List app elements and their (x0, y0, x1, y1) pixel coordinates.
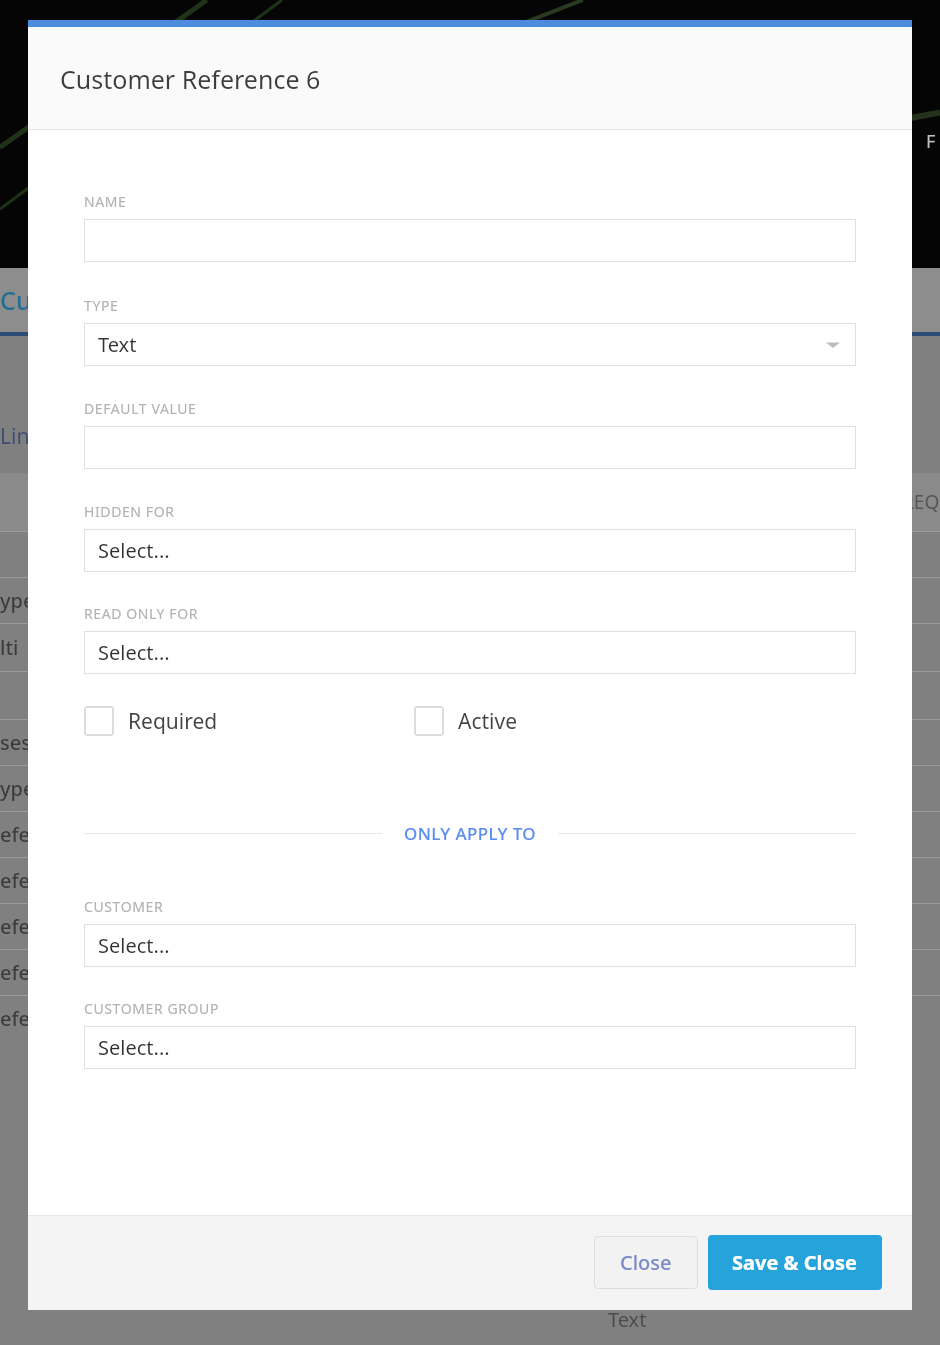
staticText: lti (0, 634, 19, 661)
button[interactable]: Select... (84, 631, 856, 674)
staticText: Close (620, 1249, 672, 1276)
staticText: efe (0, 867, 31, 894)
staticText: ONLY APPLY TO (404, 822, 536, 845)
staticText: ype (0, 587, 35, 614)
staticText: Select... (98, 1034, 170, 1061)
staticText: Lin (0, 422, 30, 451)
staticText: Cus (0, 283, 44, 317)
staticText: REQ (902, 489, 940, 515)
staticText: CUSTOMER GROUP (84, 999, 219, 1018)
button[interactable]: Save & Close (708, 1235, 882, 1290)
staticText: Select... (98, 639, 170, 666)
other: Open type dropdown (826, 338, 840, 352)
staticText: Customer Reference 6 (60, 62, 321, 96)
button[interactable]: Active (414, 706, 518, 736)
staticText: Text (98, 331, 137, 358)
button[interactable] (84, 426, 856, 469)
staticText: efe (0, 959, 31, 986)
staticText: Save & Close (732, 1249, 858, 1276)
staticText: READ ONLY FOR (84, 604, 199, 623)
staticText: efe (0, 913, 31, 940)
staticText: Select... (98, 932, 170, 959)
staticText: HIDDEN FOR (84, 502, 175, 521)
button[interactable]: Select... (84, 529, 856, 572)
staticText: ses (0, 729, 31, 756)
staticText: ype (0, 775, 35, 802)
staticText: Active (458, 707, 518, 736)
staticText: TYPE (84, 296, 119, 315)
button[interactable]: Select... (84, 924, 856, 967)
staticText: eference 10 (0, 1005, 112, 1032)
button[interactable]: Text (84, 323, 856, 366)
button[interactable]: Required (84, 706, 414, 736)
button[interactable] (84, 219, 856, 262)
staticText: DEFAULT VALUE (84, 399, 197, 418)
staticText: Select... (98, 537, 170, 564)
button[interactable]: Close (594, 1236, 698, 1289)
staticText: efe (0, 821, 31, 848)
staticText: F (926, 129, 936, 154)
staticText: CUSTOMER (84, 897, 164, 916)
staticText: Text (608, 1306, 647, 1333)
staticText: Required (128, 707, 218, 736)
button[interactable]: Select... (84, 1026, 856, 1069)
staticText: NAME (84, 192, 127, 211)
